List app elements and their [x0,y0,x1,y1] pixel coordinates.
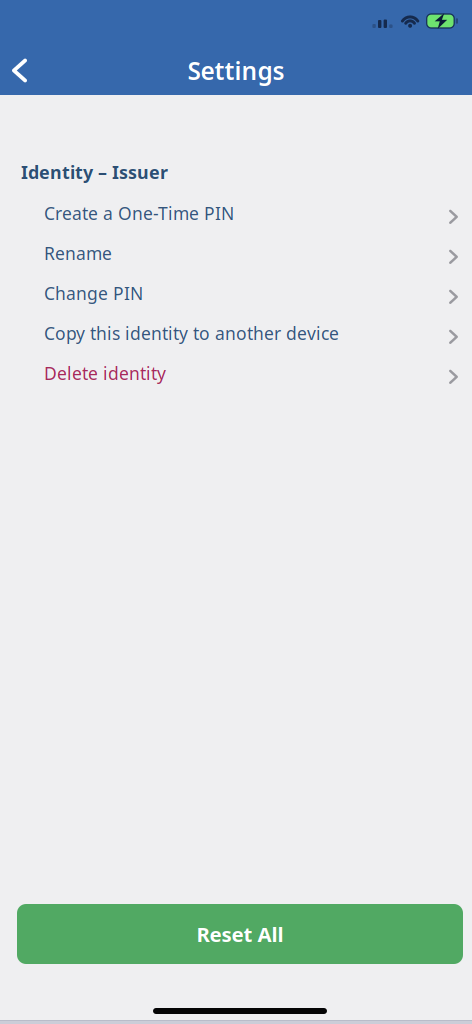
button[interactable]: Back [0,42,43,95]
button[interactable]: Change PIN [0,273,472,313]
button[interactable]: Rename [0,233,472,273]
button[interactable]: Copy this identity to another device [0,313,472,353]
staticText: Delete identity [44,361,166,385]
staticText: Reset All [196,920,283,948]
staticText: Settings [187,54,284,87]
staticText: Copy this identity to another device [44,321,339,345]
button[interactable]: Reset All [17,904,463,964]
staticText: Change PIN [44,281,143,305]
staticText: Identity – Issuer [21,160,168,184]
button[interactable]: Create a One-Time PIN [0,193,472,233]
button[interactable]: Delete identity [0,353,472,393]
staticText: Rename [44,241,112,265]
staticText: Create a One-Time PIN [44,201,234,225]
